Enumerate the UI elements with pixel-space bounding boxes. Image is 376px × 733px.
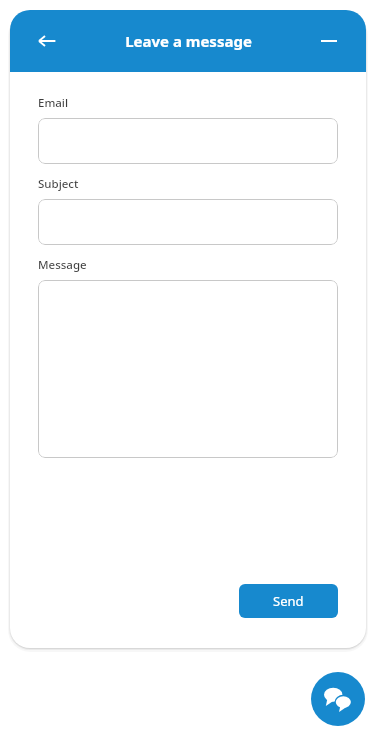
staticText: Message [38, 257, 87, 273]
staticText: Send [273, 592, 304, 610]
staticText: Subject [38, 176, 79, 192]
staticText: Email [38, 95, 69, 111]
staticText: Leave a message [125, 31, 252, 51]
button[interactable]: Email [38, 118, 338, 164]
button[interactable]: Message [38, 280, 338, 458]
button[interactable]: Subject [38, 199, 338, 245]
button[interactable]: Send [239, 584, 338, 618]
button[interactable]: Minimize [312, 24, 346, 58]
button[interactable]: Open chat [311, 672, 365, 726]
button[interactable]: Back [30, 24, 64, 58]
